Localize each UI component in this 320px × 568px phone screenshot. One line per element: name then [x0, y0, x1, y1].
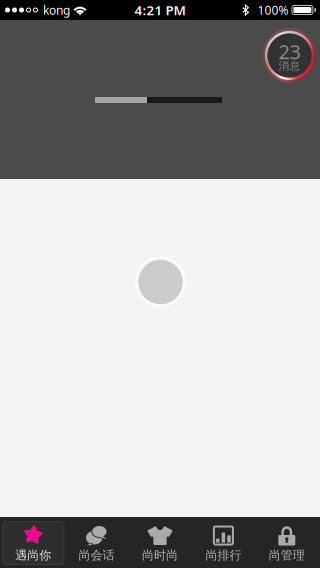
staticText: 尚管理 — [269, 548, 305, 563]
staticText: 尚排行 — [205, 548, 241, 563]
staticText: 尚会话 — [79, 548, 115, 563]
staticText: 消息 — [278, 59, 300, 72]
staticText: kong — [43, 2, 70, 18]
button[interactable]: 23 消息 — [265, 31, 314, 80]
staticText: 4:21 PM — [134, 1, 185, 19]
staticText: 100% — [257, 2, 288, 18]
button[interactable]: 尚会话 — [65, 521, 128, 565]
button[interactable]: 遇尚你 — [2, 521, 64, 565]
button[interactable]: 尚管理 — [256, 521, 318, 565]
button[interactable]: 尚时尚 — [129, 521, 191, 565]
staticText: 23 — [278, 38, 300, 65]
button[interactable]: 尚排行 — [192, 521, 255, 565]
staticText: 遇尚你 — [15, 548, 51, 563]
staticText: 尚时尚 — [142, 548, 178, 563]
